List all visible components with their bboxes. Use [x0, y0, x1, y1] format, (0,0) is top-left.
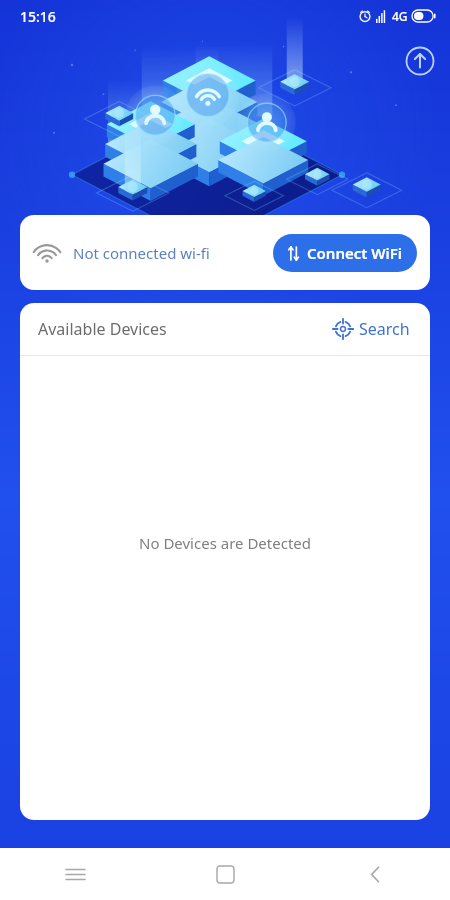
staticText: 4G	[392, 8, 408, 24]
button[interactable]: Upload	[405, 46, 435, 76]
button[interactable]: Search	[332, 314, 412, 344]
staticText: Not connected wi-fi	[73, 243, 210, 263]
staticText: Search	[359, 318, 410, 340]
button[interactable]: Recent apps	[0, 848, 150, 900]
button[interactable]: Connect WiFi	[273, 234, 417, 272]
staticText: Available Devices	[38, 318, 167, 340]
staticText: Connect WiFi	[307, 243, 403, 263]
button[interactable]: Home	[150, 848, 300, 900]
staticText: 15:16	[20, 7, 56, 26]
button[interactable]: Back	[300, 848, 450, 900]
staticText: No Devices are Detected	[139, 533, 311, 553]
